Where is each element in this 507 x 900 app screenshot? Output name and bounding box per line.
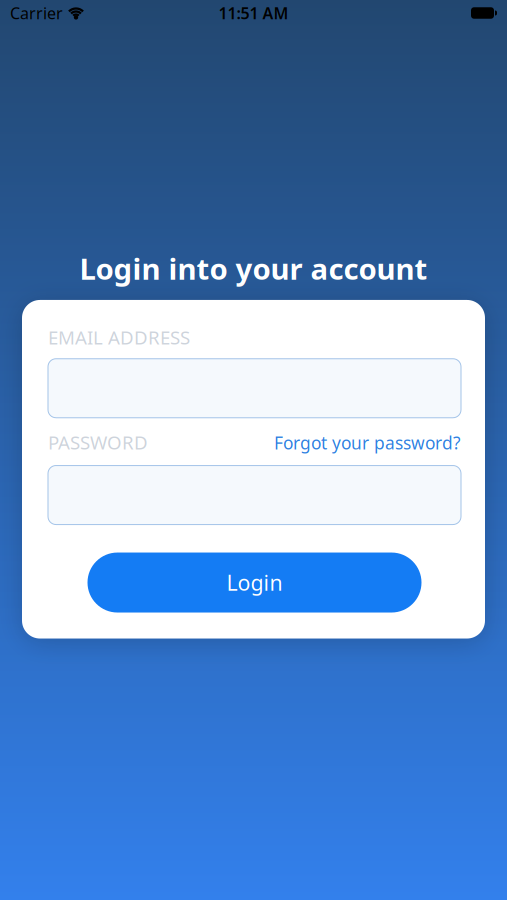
staticText: Forgot your password? — [274, 431, 461, 454]
button[interactable]: Forgot your password? — [274, 431, 461, 454]
staticText: EMAIL ADDRESS — [48, 325, 190, 350]
staticText: Login — [226, 568, 282, 597]
staticText: Login into your account — [79, 249, 427, 288]
staticText: PASSWORD — [48, 430, 148, 454]
button[interactable]: Password — [48, 465, 461, 524]
button[interactable]: Login — [87, 552, 421, 612]
button[interactable]: Email address — [48, 359, 461, 418]
staticText: Carrier — [10, 2, 63, 24]
staticText: 11:51 AM — [218, 2, 288, 24]
